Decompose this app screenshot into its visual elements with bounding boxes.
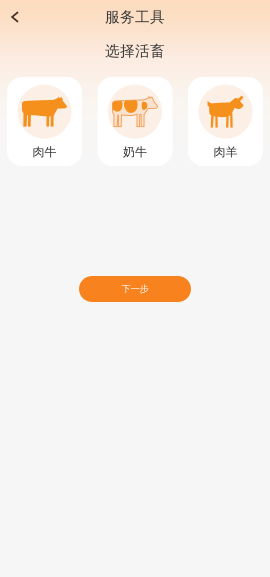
staticText: 下一步	[121, 283, 148, 295]
staticText: 肉羊	[213, 145, 237, 159]
button[interactable]: 奶牛	[97, 77, 172, 166]
button[interactable]: 肉羊	[188, 77, 263, 166]
staticText: 选择活畜	[105, 42, 165, 60]
staticText: 服务工具	[105, 8, 165, 26]
button[interactable]: 肉牛	[7, 77, 82, 166]
staticText: 奶牛	[123, 145, 147, 159]
staticText: 肉牛	[32, 145, 56, 159]
button[interactable]: 返回	[0, 0, 30, 34]
button[interactable]: 下一步	[79, 276, 191, 302]
